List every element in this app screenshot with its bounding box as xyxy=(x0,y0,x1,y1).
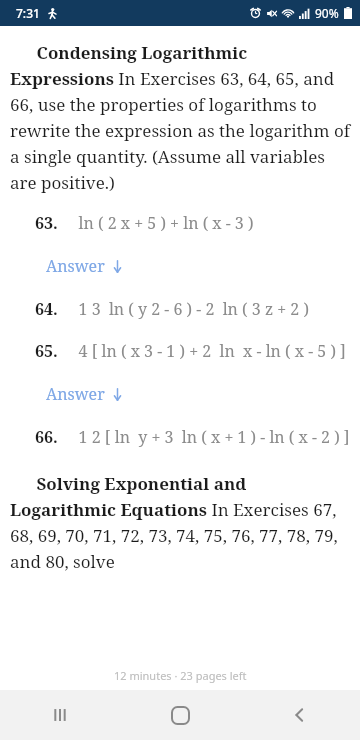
staticText: 7:31 xyxy=(16,5,40,21)
staticText: 90% xyxy=(315,5,339,21)
staticText: Answer xyxy=(46,255,105,277)
staticText: 12 minutes · 23 pages left xyxy=(114,668,247,683)
button[interactable]: Answer xyxy=(46,382,124,406)
staticText: Condensing Logarithmic Expressions In Ex… xyxy=(10,41,352,194)
staticText: 64. 1 3 ln ( y 2 - 6 ) - 2 ln ( 3 z + 2 … xyxy=(10,298,352,320)
staticText: 63. ln ( 2 x + 5 ) + ln ( x - 3 ) xyxy=(10,212,352,234)
button[interactable]: Recents xyxy=(0,690,120,740)
staticText: 66. 1 2 [ ln y + 3 ln ( x + 1 ) - ln ( x… xyxy=(10,426,352,448)
button[interactable]: Home xyxy=(120,690,240,740)
staticText: Solving Exponential and Logarithmic Equa… xyxy=(10,472,352,573)
staticText: Answer xyxy=(46,383,105,405)
staticText: 65. 4 [ ln ( x 3 - 1 ) + 2 ln x - ln ( x… xyxy=(10,340,352,362)
button[interactable]: Back xyxy=(240,690,360,740)
button[interactable]: Answer xyxy=(46,254,124,278)
